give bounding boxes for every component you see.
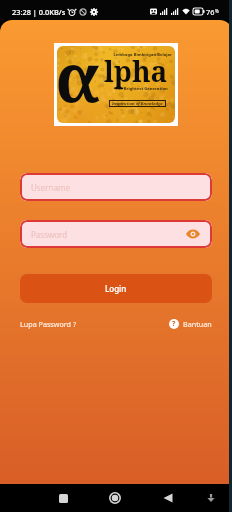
staticText: Username — [31, 182, 201, 193]
button[interactable]: ? — [169, 316, 212, 332]
button[interactable]: Home — [103, 486, 127, 510]
button[interactable]: Password — [20, 220, 212, 248]
button[interactable]: Recent apps — [51, 486, 75, 510]
button[interactable]: Back — [156, 486, 180, 510]
button[interactable]: Lupa Password ? — [20, 316, 77, 332]
button[interactable]: Login — [20, 274, 212, 303]
staticText: Inspiration of Knowledge — [112, 101, 163, 106]
staticText: Login — [105, 283, 127, 294]
button[interactable]: Toggle password visibility — [185, 226, 201, 242]
staticText: Lupa Password ? — [20, 319, 77, 329]
button[interactable]: Hide keyboard — [201, 488, 221, 508]
staticText: 76 — [206, 7, 215, 17]
staticText: Lembaga Bimbingan Belajar — [57, 52, 172, 57]
staticText: ? — [172, 319, 176, 329]
staticText: Bantuan — [183, 319, 212, 329]
button[interactable]: Username — [20, 173, 212, 201]
staticText: % — [215, 8, 219, 14]
staticText: 23:28 | 0.0KB/s — [12, 7, 66, 17]
staticText: Password — [31, 229, 185, 240]
staticText: lpha — [104, 52, 168, 90]
staticText: α — [55, 29, 101, 106]
staticText: The Brightest Generation — [115, 86, 168, 92]
